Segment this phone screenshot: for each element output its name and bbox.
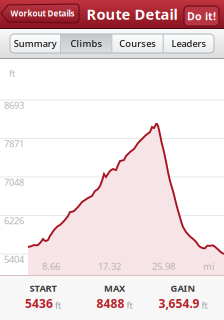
button[interactable]: Climbs bbox=[61, 34, 111, 53]
button[interactable]: Do it! bbox=[184, 6, 219, 26]
staticText: 6226 bbox=[4, 214, 24, 227]
staticText: 7871 bbox=[4, 137, 24, 150]
staticText: 8488 bbox=[96, 295, 124, 311]
staticText: 25.98 bbox=[152, 260, 175, 272]
staticText: GAIN bbox=[170, 282, 195, 294]
staticText: ft bbox=[55, 299, 61, 311]
staticText: 5404 bbox=[4, 253, 24, 265]
staticText: Summary bbox=[14, 37, 57, 50]
staticText: 17.32 bbox=[98, 260, 121, 272]
staticText: 8.66 bbox=[42, 260, 60, 272]
staticText: 7048 bbox=[4, 176, 24, 188]
button[interactable]: Workout Details bbox=[1, 4, 79, 23]
staticText: START bbox=[29, 282, 56, 294]
staticText: Route Detail bbox=[86, 4, 177, 24]
staticText: Climbs bbox=[70, 37, 102, 50]
staticText: ft bbox=[201, 299, 207, 311]
staticText: Leaders bbox=[171, 37, 206, 50]
staticText: Workout Details bbox=[10, 8, 74, 19]
staticText: Courses bbox=[119, 37, 156, 50]
button[interactable]: Courses bbox=[112, 34, 163, 53]
button[interactable]: Summary bbox=[10, 34, 60, 53]
staticText: 5436 bbox=[25, 295, 53, 311]
staticText: Do it! bbox=[187, 9, 216, 23]
staticText: ft bbox=[9, 67, 15, 79]
staticText: ft bbox=[126, 299, 132, 311]
button[interactable]: Leaders bbox=[164, 34, 214, 53]
staticText: MAX bbox=[104, 282, 125, 294]
staticText: 3,654.9 bbox=[158, 295, 199, 311]
staticText: mi bbox=[203, 260, 214, 272]
staticText: 8693 bbox=[4, 99, 24, 111]
